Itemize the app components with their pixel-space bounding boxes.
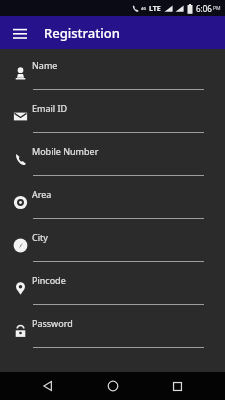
button[interactable]: Password xyxy=(0,310,225,353)
button[interactable]: Email ID xyxy=(0,95,225,138)
button[interactable]: Name xyxy=(0,52,225,95)
staticText: LTE xyxy=(149,4,161,14)
staticText: 6:06 xyxy=(196,3,212,14)
button[interactable]: Recent apps xyxy=(161,372,193,400)
button[interactable]: Back xyxy=(32,372,64,400)
staticText: Area xyxy=(32,188,52,200)
staticText: 4G xyxy=(141,6,147,11)
button[interactable]: Mobile Number xyxy=(0,138,225,181)
button[interactable]: City xyxy=(0,224,225,267)
staticText: Registration xyxy=(44,24,120,42)
staticText: Pincode xyxy=(32,274,66,286)
staticText: Password xyxy=(32,317,73,329)
staticText: City xyxy=(32,231,48,243)
button[interactable]: Open navigation menu xyxy=(8,21,32,45)
staticText: Email ID xyxy=(32,102,68,114)
button[interactable]: Area xyxy=(0,181,225,224)
button[interactable]: Pincode xyxy=(0,267,225,310)
staticText: Name xyxy=(32,59,58,71)
button[interactable]: Home xyxy=(97,372,129,400)
staticText: Mobile Number xyxy=(32,145,99,157)
staticText: PM xyxy=(213,5,221,12)
